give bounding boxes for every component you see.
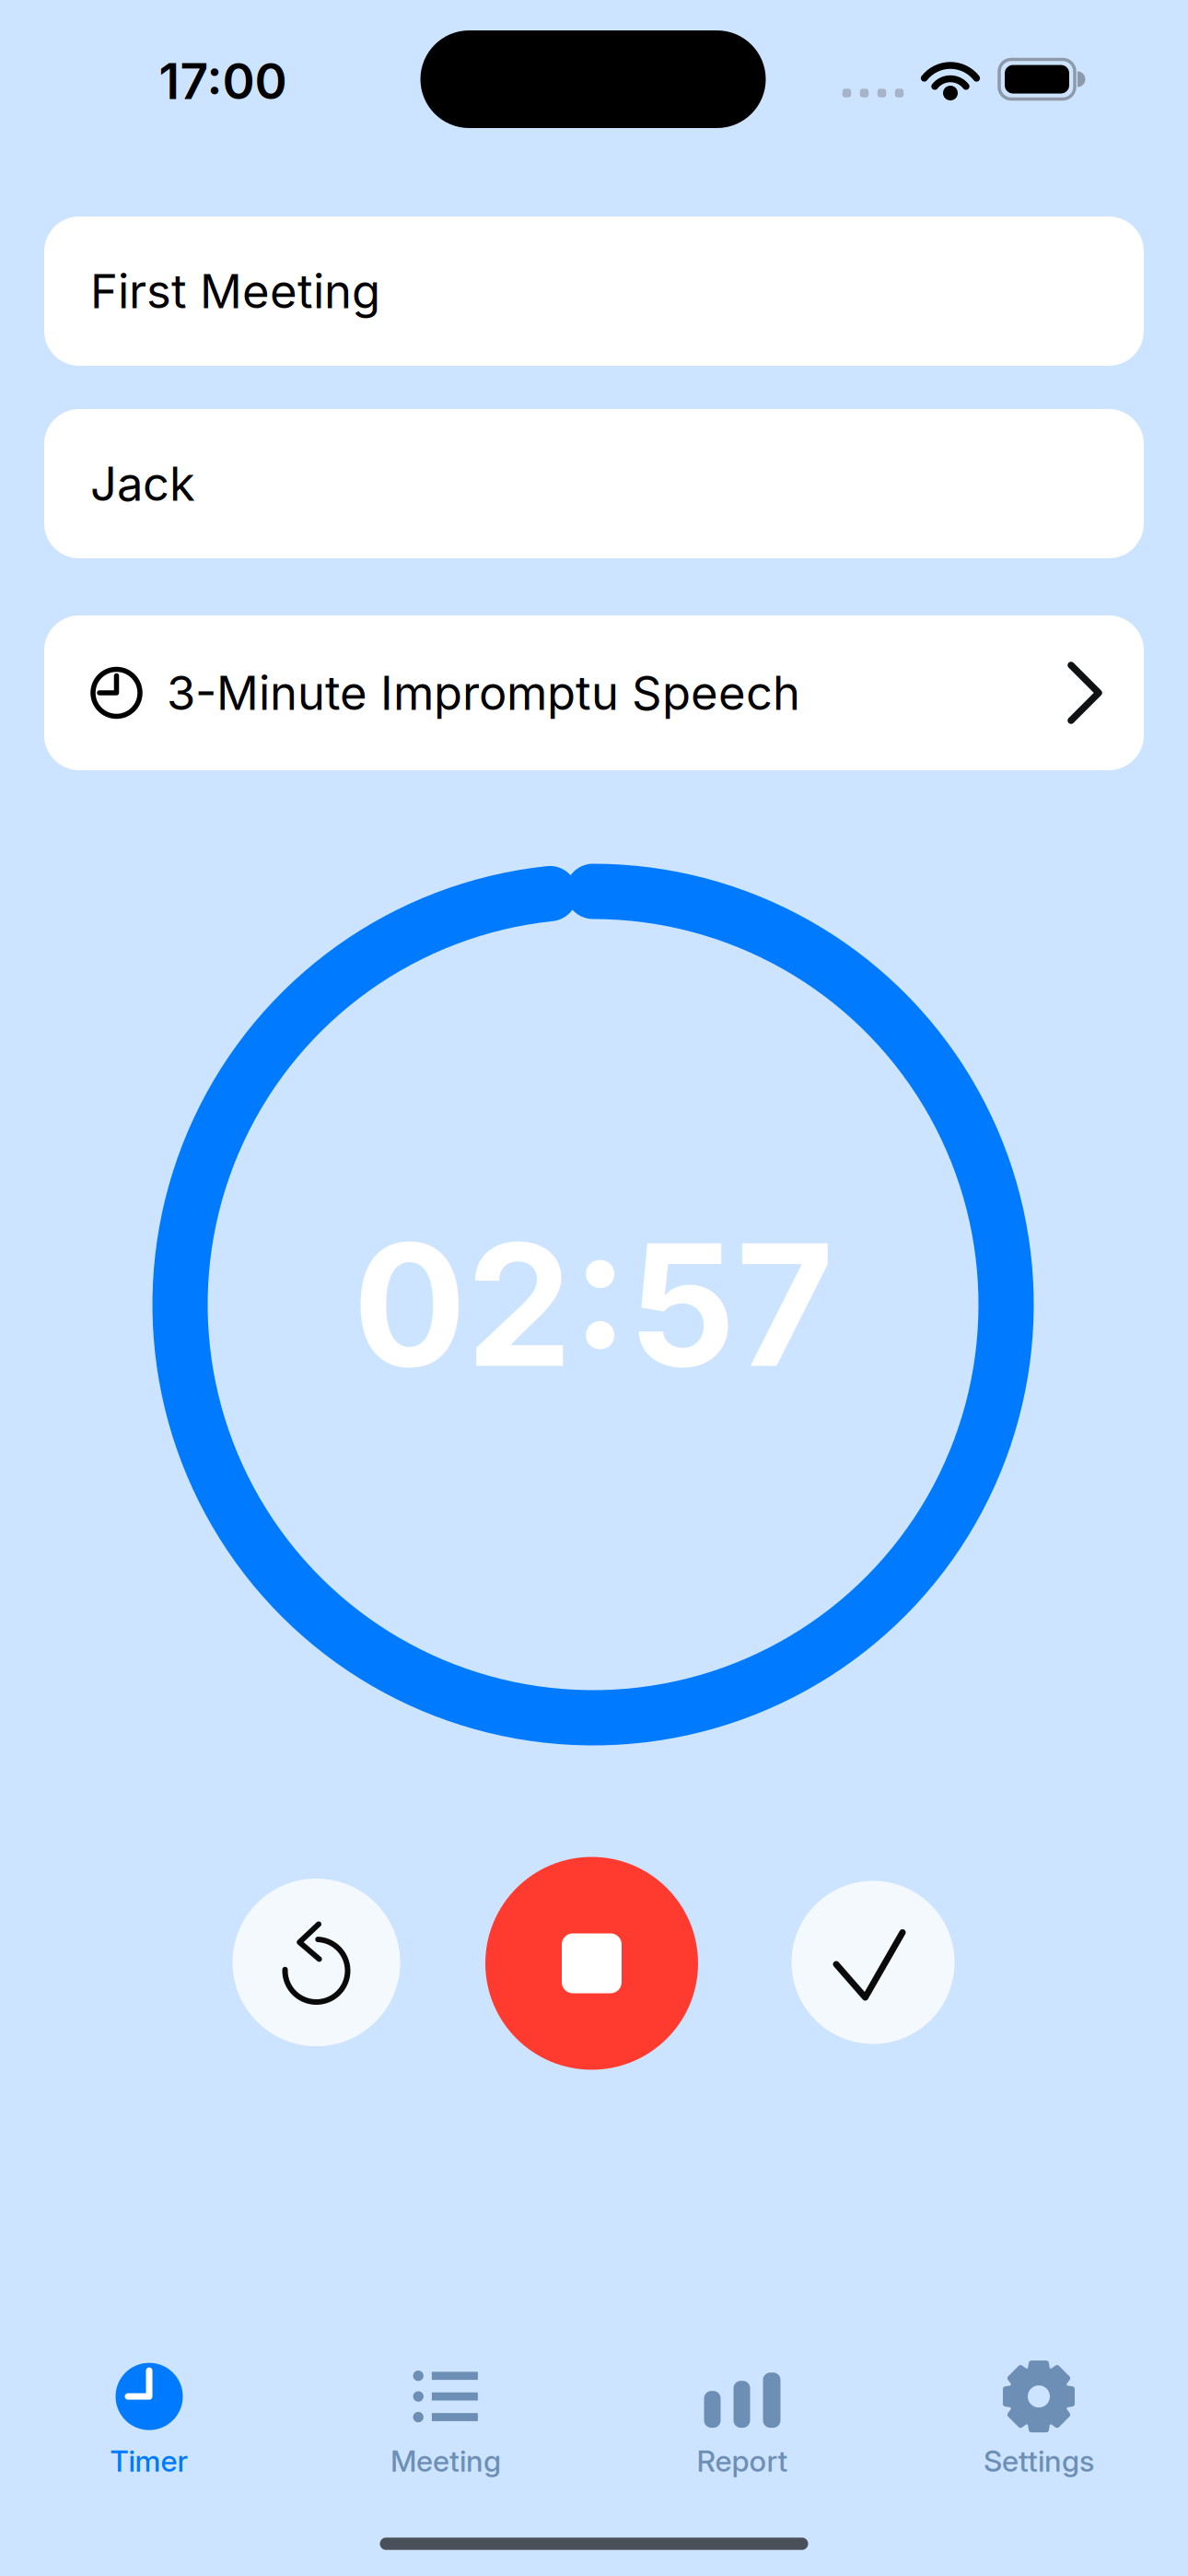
button[interactable]: Jack	[44, 409, 1144, 558]
button[interactable]: Reset	[233, 1879, 400, 2046]
staticText: Jack	[90, 456, 195, 511]
button[interactable]: Report	[594, 2351, 891, 2489]
button[interactable]: Stop	[485, 1857, 698, 2070]
button[interactable]: 3-Minute Impromptu Speech	[44, 615, 1144, 770]
button[interactable]: Meeting	[297, 2351, 594, 2489]
staticText: Timer	[110, 2443, 188, 2478]
staticText: Settings	[984, 2443, 1094, 2478]
staticText: 02:57	[353, 1205, 833, 1404]
staticText: 3-Minute Impromptu Speech	[167, 665, 800, 720]
staticText: Meeting	[390, 2443, 501, 2478]
button[interactable]: Timer	[1, 2351, 297, 2489]
button[interactable]: First Meeting	[44, 217, 1144, 366]
button[interactable]: Settings	[891, 2351, 1187, 2489]
button[interactable]: Done	[792, 1881, 955, 2044]
staticText: Report	[697, 2443, 788, 2478]
staticText: First Meeting	[90, 264, 380, 319]
staticText: 17:00	[159, 52, 287, 110]
